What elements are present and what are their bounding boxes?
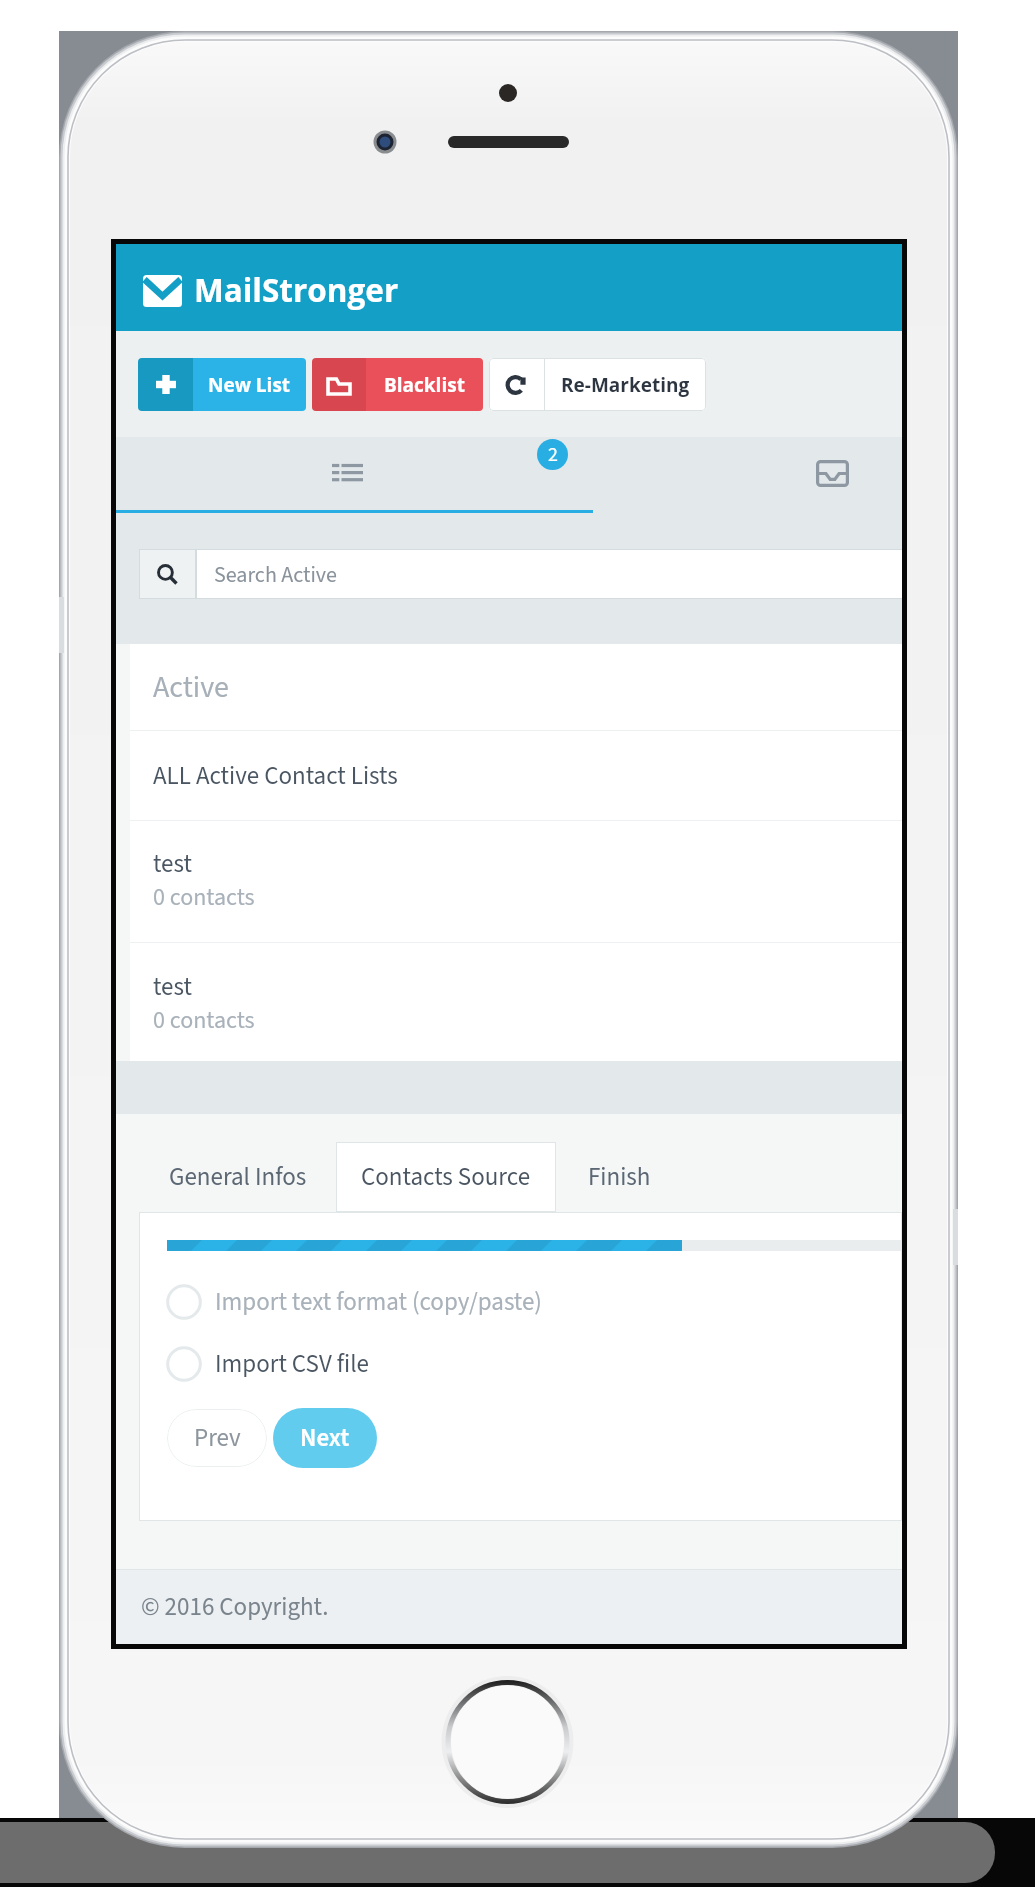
button[interactable]: Next — [273, 1408, 377, 1468]
staticText: Blacklist — [384, 372, 465, 398]
button[interactable]: test — [130, 821, 902, 942]
staticText: Import text format (copy/paste) — [215, 1284, 542, 1320]
staticText: 0 contacts — [153, 1003, 255, 1037]
button[interactable]: New List — [138, 358, 306, 411]
staticText: New List — [208, 372, 291, 398]
staticText: Re-Marketing — [561, 372, 690, 398]
staticText: © 2016 Copyright. — [141, 1589, 329, 1625]
staticText: General Infos — [169, 1159, 307, 1195]
button[interactable]: Blacklist — [312, 358, 483, 411]
button[interactable]: ALL Active Contact Lists — [130, 731, 902, 820]
button[interactable]: Lists — [116, 437, 593, 513]
button[interactable]: Finish — [556, 1142, 682, 1212]
staticText: test — [153, 846, 192, 882]
button[interactable]: Import CSV file — [166, 1342, 369, 1386]
staticText: Search Active — [214, 559, 337, 590]
button[interactable]: General Infos — [139, 1142, 336, 1212]
staticText: 0 contacts — [153, 880, 255, 914]
staticText: test — [153, 969, 192, 1005]
button[interactable]: Search Active — [139, 549, 902, 599]
staticText: ALL Active Contact Lists — [153, 758, 398, 794]
staticText: 2 — [548, 441, 558, 469]
staticText: Contacts Source — [361, 1159, 531, 1195]
button[interactable]: MailStronger — [116, 244, 902, 331]
button[interactable]: Prev — [167, 1409, 267, 1467]
staticText: Finish — [588, 1159, 651, 1195]
button[interactable]: Import text format (copy/paste) — [166, 1280, 542, 1324]
button[interactable]: Contacts Source — [336, 1142, 556, 1212]
button[interactable]: Archive — [593, 437, 902, 513]
button[interactable]: test — [130, 943, 902, 1061]
staticText: Prev — [194, 1420, 241, 1456]
staticText: MailStronger — [194, 268, 399, 311]
staticText: Active — [153, 666, 229, 709]
staticText: Import CSV file — [215, 1346, 369, 1382]
staticText: Next — [300, 1420, 350, 1456]
button[interactable]: Re-Marketing — [489, 358, 706, 411]
